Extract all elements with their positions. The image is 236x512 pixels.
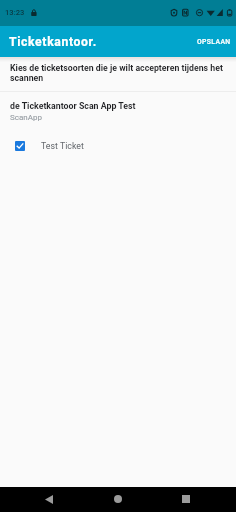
- staticText: OPSLAAN: [197, 38, 231, 46]
- staticText: Test Ticket: [41, 141, 84, 151]
- staticText: Ticketkantoor.: [9, 35, 97, 49]
- button[interactable]: OPSLAAN: [192, 31, 236, 53]
- button[interactable]: Test Ticket: [0, 139, 236, 153]
- button[interactable]: Back: [41, 491, 57, 507]
- staticText: ScanApp: [10, 113, 42, 122]
- button[interactable]: Home: [110, 491, 126, 507]
- staticText: de Ticketkantoor Scan App Test: [10, 101, 136, 111]
- button[interactable]: Recent apps: [178, 491, 194, 507]
- staticText: Kies de ticketsoorten die je wilt accept…: [10, 63, 227, 83]
- staticText: 13:23: [5, 8, 25, 17]
